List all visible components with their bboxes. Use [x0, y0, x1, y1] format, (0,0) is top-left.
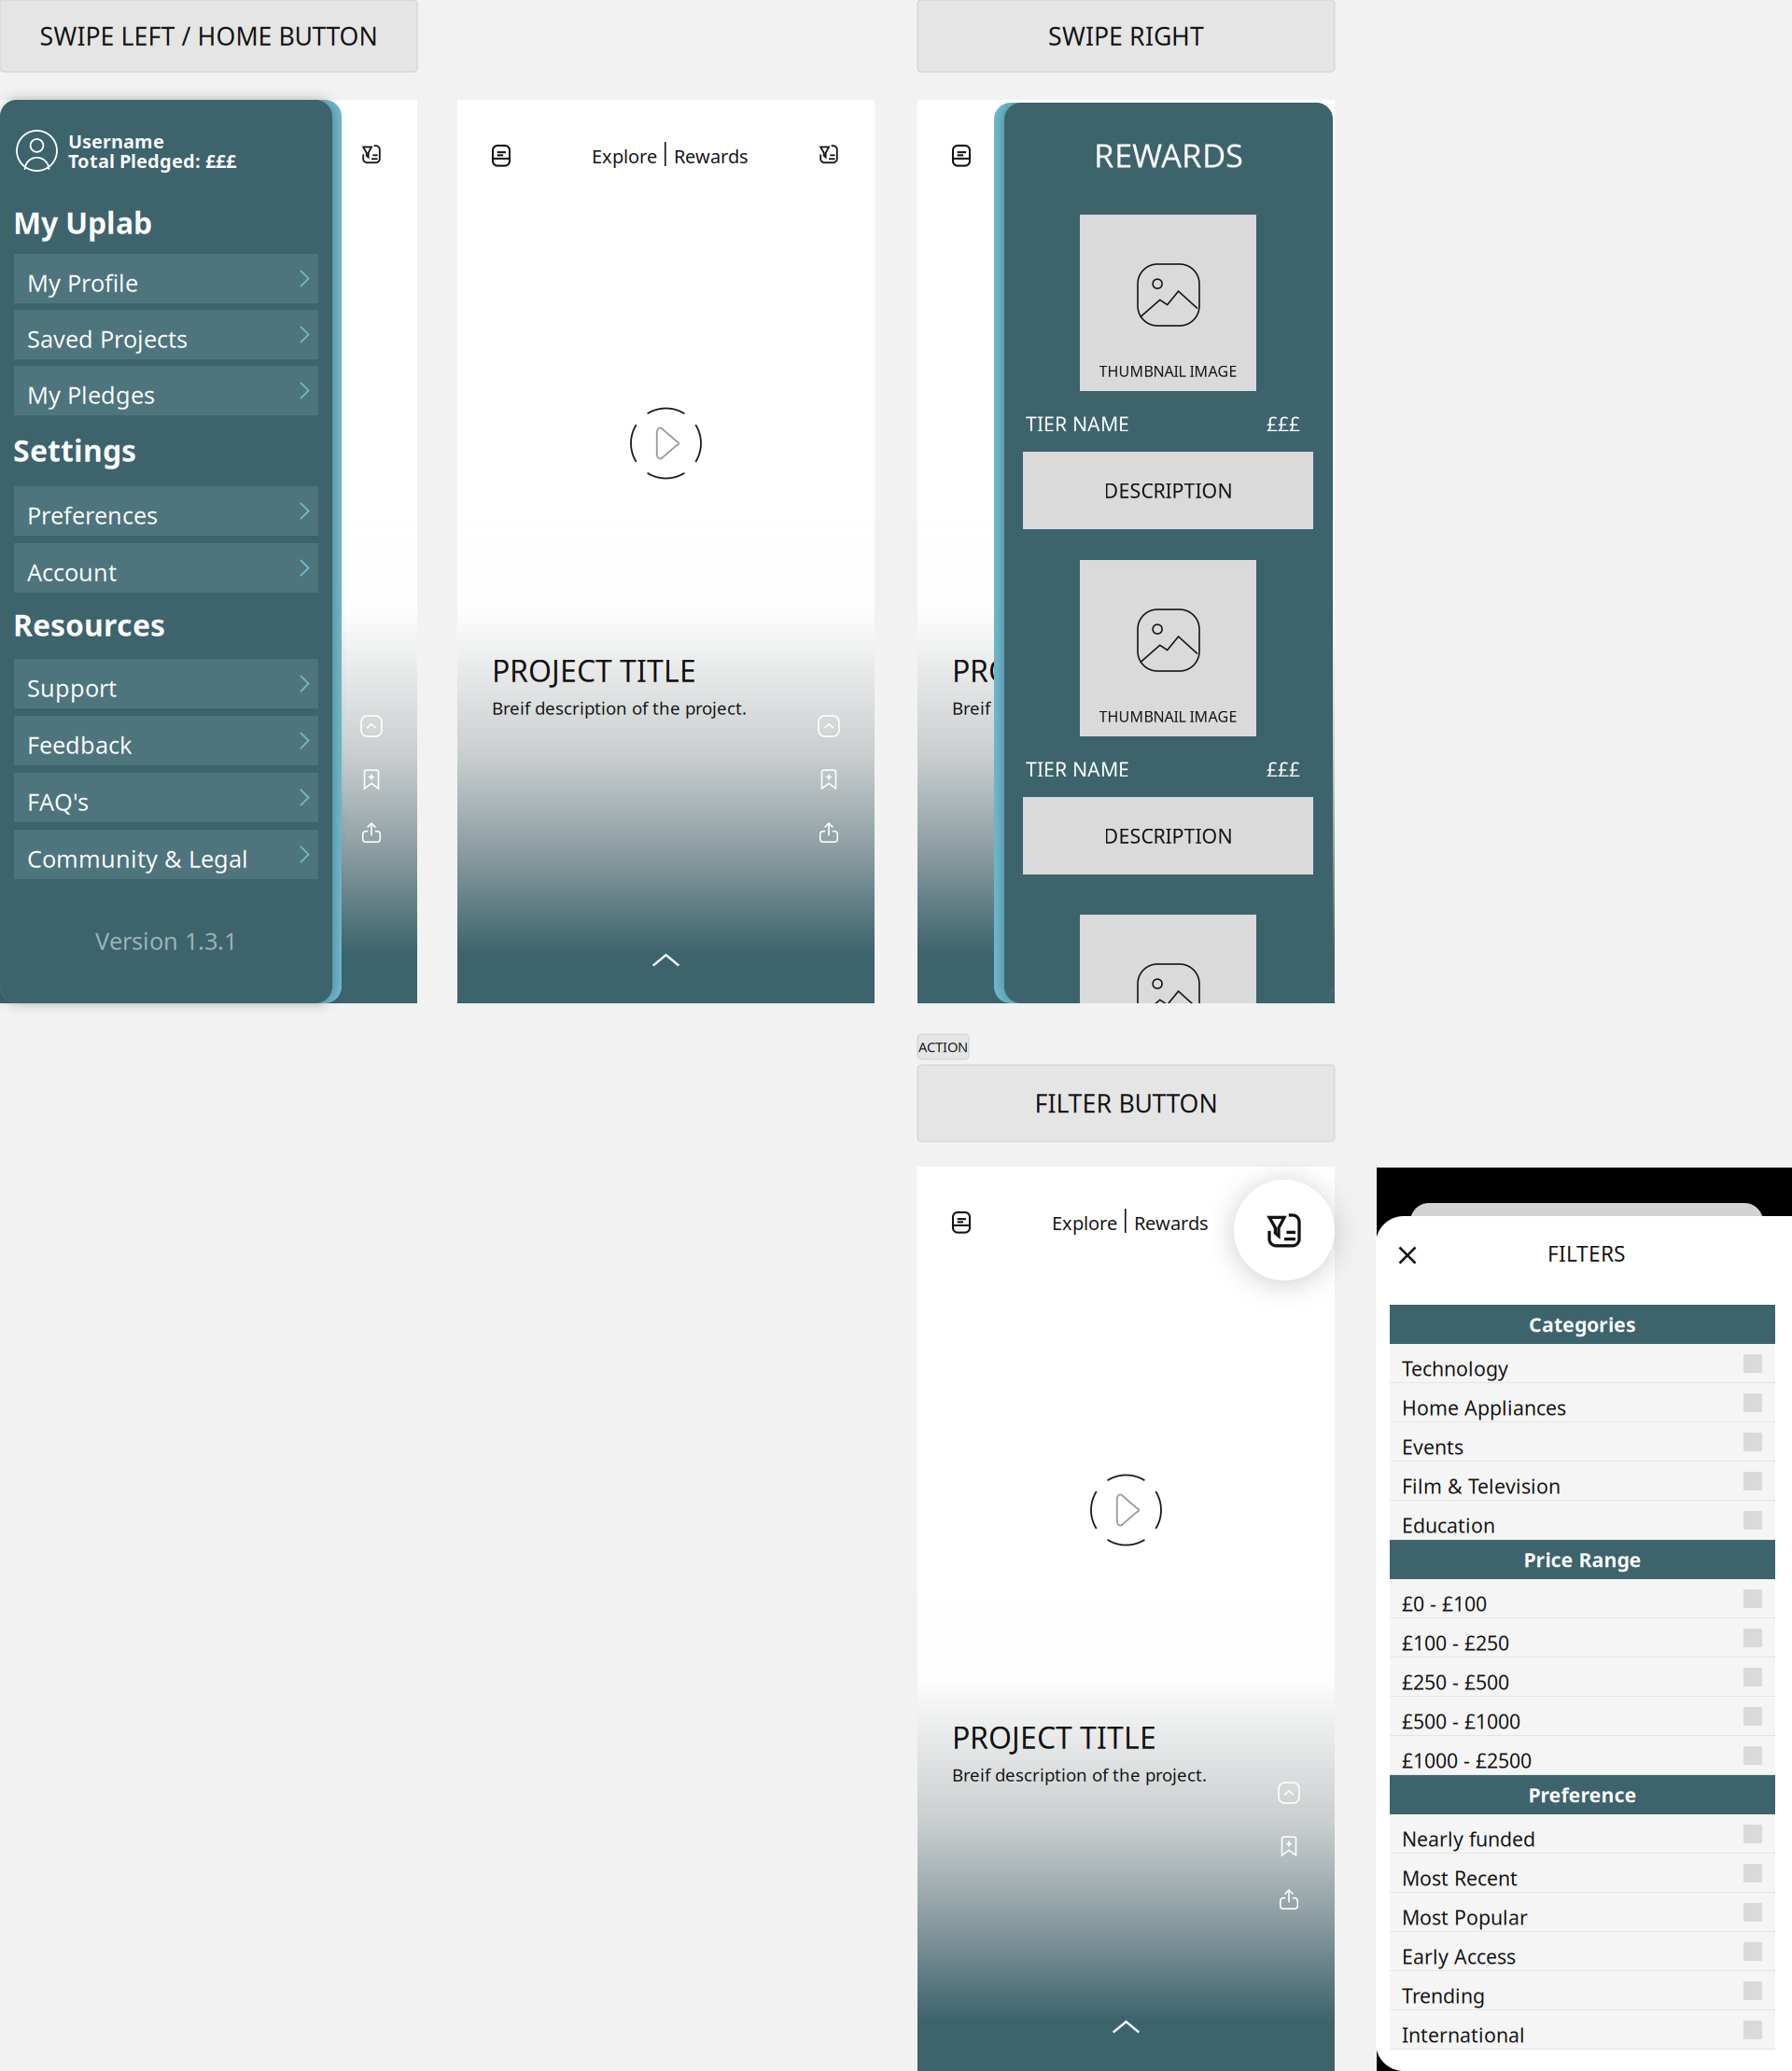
button[interactable]: Most Recent: [1390, 1854, 1775, 1893]
staticText: TIER NAME: [1026, 756, 1129, 782]
button[interactable]: Early Access: [1390, 1932, 1775, 1971]
staticText: Version 1.3.1: [95, 925, 237, 956]
button[interactable]: Saved Projects: [14, 310, 318, 359]
staticText: My Uplab: [13, 203, 152, 242]
button[interactable]: Nearly funded: [1390, 1814, 1775, 1854]
button[interactable]: Feed: [953, 1212, 970, 1233]
staticText: ACTION: [918, 1038, 968, 1056]
button[interactable]: £0 - £100: [1390, 1579, 1775, 1618]
button[interactable]: Explore: [110, 144, 200, 169]
button[interactable]: Feedback: [14, 716, 318, 765]
button[interactable]: My Pledges: [14, 366, 318, 415]
staticText: Technology: [1402, 1355, 1508, 1382]
button[interactable]: Explore: [1028, 144, 1117, 169]
button[interactable]: Upvote: [1279, 1783, 1299, 1803]
button[interactable]: My Profile: [14, 254, 318, 303]
staticText: TIER NAME: [1026, 411, 1129, 437]
button[interactable]: Expand: [652, 954, 680, 967]
button[interactable]: Share: [361, 822, 382, 843]
staticText: International: [1402, 2022, 1525, 2048]
staticText: £100 - £250: [1402, 1630, 1509, 1656]
staticText: PROJECT TITLE: [952, 651, 1156, 690]
staticText: SWIPE RIGHT: [1048, 19, 1204, 52]
button[interactable]: Education: [1390, 1501, 1775, 1540]
button[interactable]: £250 - £500: [1390, 1658, 1775, 1697]
staticText: Film & Television: [1402, 1473, 1561, 1499]
button[interactable]: Rewards: [1134, 144, 1224, 169]
button[interactable]: International: [1390, 2010, 1775, 2050]
staticText: Education: [1402, 1512, 1495, 1538]
button[interactable]: Rewards: [674, 144, 763, 169]
button[interactable]: Feed: [953, 146, 970, 166]
button[interactable]: Filters: [1234, 1180, 1335, 1280]
staticText: PROJECT TITLE: [492, 651, 696, 690]
button[interactable]: Explore: [1028, 1210, 1117, 1235]
staticText: Early Access: [1402, 1943, 1516, 1970]
button[interactable]: £500 - £1000: [1390, 1697, 1775, 1736]
staticText: Breif description of the project.: [492, 696, 747, 719]
button[interactable]: Save: [1279, 769, 1299, 790]
button[interactable]: Filters: [1279, 1210, 1299, 1231]
staticText: Explore: [1052, 144, 1117, 169]
button[interactable]: Account: [14, 543, 318, 593]
staticText: Rewards: [674, 144, 749, 169]
button[interactable]: Support: [14, 659, 318, 708]
button[interactable]: Filters: [819, 144, 839, 164]
staticText: Most Popular: [1402, 1904, 1528, 1930]
button[interactable]: Explore: [567, 144, 657, 169]
staticText: Nearly funded: [1402, 1826, 1535, 1852]
button[interactable]: Save: [819, 769, 839, 790]
staticText: £££: [1267, 411, 1300, 437]
staticText: Explore: [592, 144, 657, 169]
button[interactable]: Upvote: [361, 716, 382, 736]
button[interactable]: Save: [1279, 1836, 1299, 1856]
staticText: THUMBNAIL IMAGE: [1099, 707, 1237, 726]
button[interactable]: Home Appliances: [1390, 1383, 1775, 1422]
button[interactable]: Expand: [1112, 2021, 1140, 2033]
staticText: Explore: [134, 144, 200, 169]
button[interactable]: Upvote: [819, 716, 839, 736]
button[interactable]: Rewards: [1134, 1210, 1224, 1235]
staticText: Categories: [1529, 1311, 1636, 1338]
button[interactable]: Events: [1390, 1422, 1775, 1462]
staticText: PROJECT TITLE: [35, 651, 239, 690]
button[interactable]: Save: [361, 769, 382, 790]
button[interactable]: Trending: [1390, 1971, 1775, 2010]
button[interactable]: £100 - £250: [1390, 1618, 1775, 1658]
button[interactable]: Filters: [361, 144, 382, 164]
button[interactable]: Technology: [1390, 1344, 1775, 1383]
staticText: THUMBNAIL IMAGE: [1099, 361, 1237, 381]
staticText: £1000 - £2500: [1402, 1747, 1532, 1774]
button[interactable]: Film & Television: [1390, 1462, 1775, 1501]
button[interactable]: Feed: [493, 146, 510, 166]
button[interactable]: Most Popular: [1390, 1893, 1775, 1932]
button[interactable]: FAQ's: [14, 773, 318, 822]
staticText: REWARDS: [1094, 133, 1243, 176]
staticText: FILTERS: [1547, 1239, 1625, 1268]
staticText: Events: [1402, 1434, 1463, 1460]
staticText: Feedback: [27, 729, 133, 760]
staticText: FILTER BUTTON: [1035, 1087, 1218, 1120]
button[interactable]: Close: [1398, 1246, 1417, 1265]
button[interactable]: Preferences: [14, 486, 318, 536]
staticText: FAQ's: [27, 786, 89, 817]
button[interactable]: Share: [819, 822, 839, 843]
staticText: Breif description of the project.: [952, 696, 1207, 719]
button[interactable]: Feed: [35, 146, 52, 166]
button[interactable]: Share: [1279, 1889, 1299, 1910]
staticText: Most Recent: [1402, 1865, 1518, 1891]
staticText: Price Range: [1524, 1546, 1641, 1573]
button[interactable]: £1000 - £2500: [1390, 1736, 1775, 1775]
button[interactable]: Rewards: [217, 144, 306, 169]
staticText: PROJECT TITLE: [952, 1717, 1156, 1757]
staticText: Breif description of the project.: [35, 696, 289, 719]
staticText: £0 - £100: [1402, 1590, 1487, 1617]
staticText: £500 - £1000: [1402, 1708, 1520, 1734]
button[interactable]: Community & Legal: [14, 830, 318, 879]
staticText: £££: [1267, 756, 1300, 782]
